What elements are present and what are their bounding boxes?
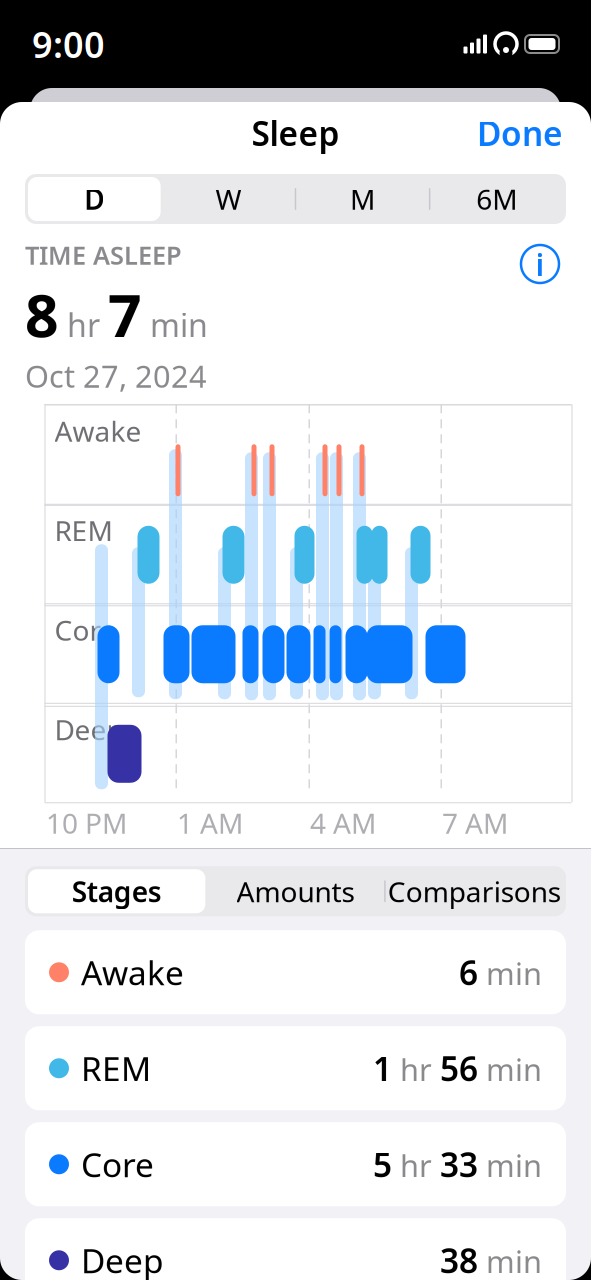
staticText: Core: [81, 1142, 154, 1186]
staticText: Awake: [54, 412, 141, 449]
staticText: 10 PM: [46, 804, 127, 841]
staticText: min: [478, 1049, 542, 1090]
button[interactable]: Deep: [25, 1218, 566, 1280]
button[interactable]: Amounts: [207, 869, 384, 913]
button[interactable]: 6M: [430, 177, 563, 221]
staticText: TIME ASLEEP: [25, 238, 182, 272]
staticText: i: [535, 244, 544, 284]
staticText: 4 AM: [310, 804, 376, 841]
staticText: 33: [440, 1142, 478, 1186]
staticText: Awake: [81, 950, 184, 994]
staticText: Core: [54, 611, 116, 648]
button[interactable]: Awake: [25, 930, 566, 1014]
button[interactable]: M: [296, 177, 429, 221]
staticText: Oct 27, 2024: [25, 355, 207, 396]
staticText: Amounts: [236, 873, 354, 910]
staticText: 38: [440, 1238, 478, 1280]
staticText: 6M: [476, 180, 517, 218]
staticText: hr: [392, 1145, 440, 1186]
staticText: REM: [81, 1046, 151, 1090]
button[interactable]: W: [162, 177, 295, 221]
staticText: D: [84, 180, 104, 218]
staticText: 6: [459, 950, 478, 994]
staticText: min: [478, 1145, 542, 1186]
staticText: Comparisons: [388, 873, 561, 910]
staticText: 8: [25, 276, 59, 353]
staticText: Done: [477, 111, 563, 155]
staticText: min: [478, 1241, 542, 1280]
staticText: 56: [440, 1046, 478, 1090]
staticText: 1: [373, 1046, 392, 1090]
staticText: hr: [59, 304, 108, 346]
staticText: M: [350, 180, 375, 218]
staticText: 5: [373, 1142, 392, 1186]
staticText: 7 AM: [442, 804, 508, 841]
button[interactable]: D: [28, 177, 161, 221]
button[interactable]: Core: [25, 1122, 566, 1206]
button[interactable]: Done: [463, 103, 577, 163]
button[interactable]: REM: [25, 1026, 566, 1110]
staticText: Deep: [54, 711, 123, 748]
staticText: REM: [54, 512, 112, 549]
button[interactable]: Comparisons: [386, 869, 563, 913]
staticText: Deep: [81, 1238, 164, 1280]
staticText: Stages: [72, 873, 162, 910]
staticText: 9:00: [32, 20, 105, 68]
button[interactable]: About sleep stages: [514, 238, 566, 290]
staticText: hr: [392, 1049, 440, 1090]
button[interactable]: Stages: [28, 869, 205, 913]
staticText: 7: [108, 276, 142, 353]
staticText: min: [142, 304, 208, 346]
staticText: Sleep: [251, 111, 339, 155]
staticText: W: [215, 180, 241, 218]
staticText: 1 AM: [177, 804, 243, 841]
staticText: min: [478, 953, 542, 994]
